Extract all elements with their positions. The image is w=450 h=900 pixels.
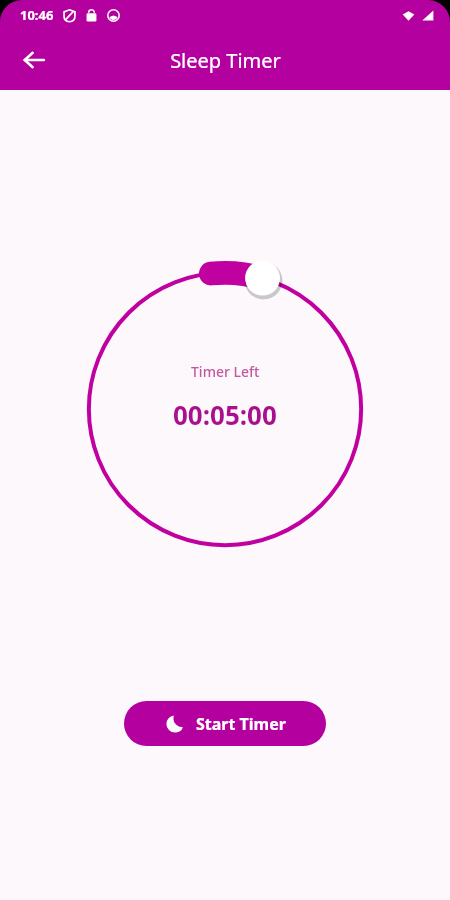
button[interactable]: Timer Left — [78, 262, 372, 556]
staticText: 10:46 — [20, 6, 54, 24]
staticText: 00:05:00 — [173, 397, 277, 432]
staticText: Start Timer — [196, 713, 286, 735]
staticText: Timer Left — [191, 362, 260, 381]
staticText: Sleep Timer — [170, 47, 281, 74]
button[interactable]: Back — [12, 38, 56, 82]
button[interactable]: Start Timer — [124, 701, 326, 746]
